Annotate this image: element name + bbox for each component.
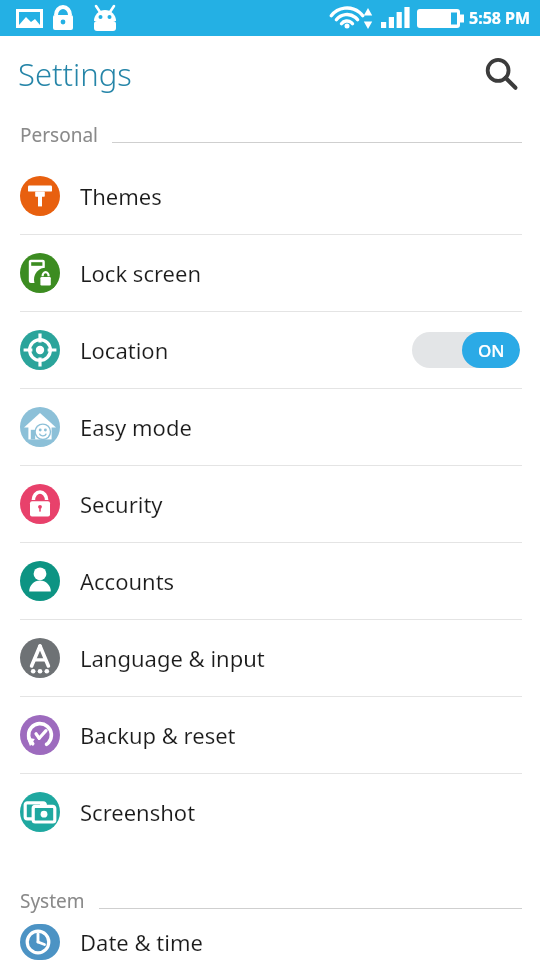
staticText: Date & time [80,927,540,957]
staticText: Accounts [80,566,540,596]
staticText: ON [478,339,505,362]
button[interactable]: Backup & reset [0,697,540,773]
button[interactable]: Accounts [0,543,540,619]
button[interactable]: Easy mode [0,389,540,465]
staticText: Themes [80,181,540,211]
button[interactable]: Screenshot [0,774,540,850]
staticText: Personal [20,122,98,148]
button[interactable]: Location [0,312,540,388]
staticText: Settings [18,53,132,95]
button[interactable]: Themes [0,158,540,234]
button[interactable]: Date & time [0,924,540,960]
staticText: Language & input [80,643,540,673]
button[interactable]: Lock screen [0,235,540,311]
staticText: System [20,888,85,914]
staticText: Backup & reset [80,720,540,750]
button[interactable]: Language & input [0,620,540,696]
button[interactable]: Location switch on [412,332,520,368]
button[interactable]: Security [0,466,540,542]
staticText: Location [80,335,412,365]
staticText: Security [80,489,540,519]
button[interactable]: Search [474,47,528,101]
staticText: Screenshot [80,797,540,827]
staticText: Lock screen [80,258,540,288]
staticText: Easy mode [80,412,540,442]
staticText: 5:58 PM [469,7,531,29]
